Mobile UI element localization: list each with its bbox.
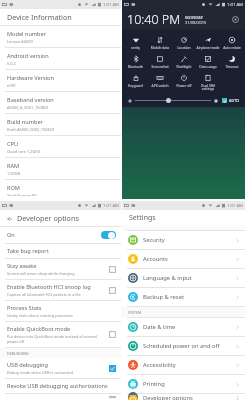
staticText: Screen will never sleep while charging [7,271,75,276]
staticText: Android version [7,52,49,60]
button[interactable]: On [0,227,121,243]
other: APK switch [156,74,164,82]
staticText: Geeky stats about running processes [7,313,73,318]
button[interactable]: Dual SIM settings [196,73,220,92]
button[interactable]: Android version [0,48,121,69]
button[interactable]: Location [172,35,196,50]
button[interactable]: Baseband version [0,92,121,113]
other: Flashlight [180,55,188,63]
button[interactable]: Printing [122,375,245,393]
staticText: Enable Bluetooth HCI snoop log [7,283,91,291]
other: Timeout [228,55,236,63]
button[interactable]: Timeout [220,54,244,69]
button[interactable]: Flashlight [172,54,196,69]
button[interactable]: Scheduled power on and off [122,337,245,355]
button[interactable]: Power off [172,73,196,88]
button[interactable]: Take bug report [0,244,121,258]
staticText: 1:01 AM [103,2,119,8]
button[interactable]: Process Stats [0,301,121,321]
button[interactable]: Airplane mode [196,35,220,50]
button[interactable]: Model number [0,26,121,47]
staticText: Put device into QuickBoot mode instead o… [7,334,105,344]
button[interactable]: Developer options [122,394,245,400]
other: Mobile data [156,36,164,44]
other: Data usage [204,55,212,63]
button[interactable]: Back [4,213,15,224]
staticText: SYSTEM [128,310,142,315]
other: Keyguard [132,74,140,82]
button[interactable]: Auto rotate [220,35,244,50]
staticText: RAM [7,162,20,170]
button[interactable]: ROM [0,180,121,199]
staticText: Accessibility [143,361,235,369]
other: Power off [180,74,188,82]
staticText: Total Storage 8G [7,193,38,196]
other: Dual SIM settings [204,74,212,82]
staticText: Airplane mode [196,45,220,49]
button[interactable]: Keyguard [123,73,148,88]
button[interactable]: Accounts [122,250,245,268]
staticText: Screenshot [148,64,172,68]
button[interactable]: Bluetooth [123,54,148,69]
staticText: On [7,231,101,239]
staticText: Process Stats [7,304,42,312]
staticText: Lenovo A6000 [7,39,33,44]
staticText: Flashlight [172,64,196,68]
button[interactable]: CPU [0,136,121,157]
staticText: AUTO [229,98,240,103]
staticText: Stay awake [7,262,37,270]
button[interactable] [166,98,171,103]
staticText: n001 [7,83,17,88]
staticText: Quad core 1.2GHZ [7,149,41,154]
staticText: 31/08/2015 [185,20,207,25]
staticText: 1:01 AM [227,203,243,209]
button[interactable]: Enable Bluetooth HCI snoop log [0,280,121,300]
staticText: 5.0.2 [7,61,16,66]
button[interactable]: Language & input [122,269,245,287]
staticText: Kraft-A6000_0002_150823 [7,127,55,132]
staticText: Take bug report [7,247,49,255]
staticText: Device Information [7,12,72,22]
staticText: USB debugging [7,361,48,369]
button[interactable]: Revoke USB debugging authorizations [0,379,121,393]
button[interactable]: Backup & reset [122,288,245,306]
button[interactable]: Enable QuickBoot mode [0,322,121,347]
staticText: Settings [129,213,156,223]
button[interactable]: USB debugging [0,358,121,378]
button[interactable]: Build number [0,114,121,135]
button[interactable]: Hardware Version [0,70,121,91]
staticText: Auto rotate [220,45,244,49]
button[interactable]: Date & time [122,318,245,336]
staticText: Backup & reset [143,293,235,301]
staticText: 1:01 AM [227,2,243,8]
button[interactable]: Screenshot [148,54,172,69]
button[interactable]: Settings [231,15,240,24]
staticText: Developer options [143,394,235,400]
staticText: Data usage [196,64,220,68]
staticText: Scheduled power on and off [143,342,235,350]
staticText: Timeout [220,64,244,68]
button[interactable]: RAM [0,158,121,179]
staticText: Developer options [17,213,79,223]
button[interactable]: Accessibility [122,356,245,374]
staticText: Printing [143,380,235,388]
button[interactable]: verity [123,35,148,50]
staticText: Hardware Version [7,74,54,82]
staticText: Power off [172,83,196,87]
button[interactable]: Stay awake [0,259,121,279]
button[interactable]: Data usage [196,54,220,69]
button[interactable]: AUTO [221,97,241,104]
staticText: Mobile data [148,45,172,49]
other: verity [132,36,140,44]
staticText: Capture all bluetooth HCI packets in a f… [7,292,81,297]
other: Airplane mode [204,36,212,44]
button[interactable]: Bug report shortcut [0,394,121,400]
button[interactable]: APK switch [148,73,172,88]
button[interactable]: Mobile data [148,35,172,50]
staticText: Enable QuickBoot mode [7,325,71,333]
button[interactable]: Security [122,231,245,249]
staticText: APK switch [148,83,172,87]
staticText: Location [172,45,196,49]
staticText: Baseband version [7,96,54,104]
staticText: CPU [7,140,19,148]
